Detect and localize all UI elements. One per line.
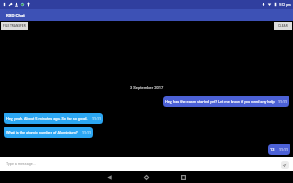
- button[interactable]: CLEAR: [274, 22, 292, 30]
- button[interactable]: Send: [281, 161, 289, 169]
- button[interactable]: FILE TRANSFER: [1, 22, 28, 30]
- staticText: 11:11: [278, 100, 287, 104]
- staticText: Type a message...: [6, 162, 36, 166]
- button[interactable]: Recents: [177, 171, 189, 183]
- button[interactable]: Back: [103, 171, 115, 183]
- staticText: FILE TRANSFER: [3, 24, 26, 28]
- staticText: Hey, has the exam started yet? Let me kn…: [165, 99, 275, 104]
- button[interactable]: Hey, yeah. About 5 minutes ago. So far s…: [4, 113, 103, 124]
- staticText: Hey, yeah. About 5 minutes ago. So far s…: [6, 116, 88, 121]
- staticText: 11:11: [92, 117, 101, 121]
- staticText: 3 September 2017: [130, 85, 164, 90]
- staticText: 11:11: [279, 148, 288, 152]
- button[interactable]: What is the atomic number of Aluminium?: [4, 127, 93, 138]
- staticText: CLEAR: [278, 24, 288, 28]
- button[interactable]: Hey, has the exam started yet? Let me kn…: [163, 96, 289, 107]
- staticText: RXO Chat: [6, 13, 25, 18]
- staticText: What is the atomic number of Aluminium?: [6, 130, 78, 135]
- button[interactable]: 13: [268, 144, 290, 155]
- staticText: 11:11: [82, 131, 91, 135]
- staticText: 9:12 pm: [279, 3, 291, 7]
- staticText: 13: [270, 147, 275, 152]
- button[interactable]: Home: [140, 171, 152, 183]
